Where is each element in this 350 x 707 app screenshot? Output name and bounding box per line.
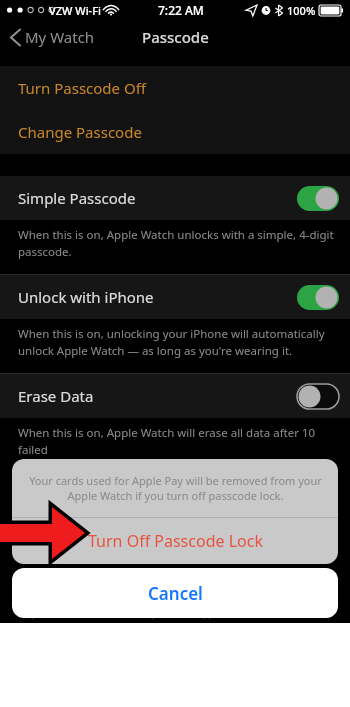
staticText: Unlock with iPhone <box>18 287 297 307</box>
staticText: Change Passcode <box>18 122 142 142</box>
staticText: My Watch <box>23 608 65 620</box>
staticText: Turn Passcode Off <box>18 78 146 98</box>
button[interactable]: Toggle on <box>297 285 339 310</box>
button[interactable]: Erase Data <box>0 374 350 418</box>
button[interactable]: Turn Passcode Off <box>0 66 350 110</box>
staticText: When this is on, unlocking your iPhone w… <box>18 326 325 358</box>
staticText: Passcode <box>142 27 209 47</box>
button[interactable]: Face Gallery <box>87 605 174 623</box>
staticText: Face Gallery <box>105 608 157 620</box>
staticText: App Store <box>197 608 239 620</box>
button[interactable]: Toggle off <box>297 384 339 409</box>
staticText: Cancel <box>148 582 203 605</box>
staticText: Your cards used for Apple Pay will be re… <box>29 473 322 503</box>
staticText: Turn Off Passcode Lock <box>88 530 263 552</box>
staticText: My Watch <box>25 27 95 47</box>
button[interactable]: Cancel <box>12 568 338 618</box>
staticText: Simple Passcode <box>18 188 297 208</box>
button[interactable]: App Store <box>174 605 262 623</box>
staticText: When this is on, Apple Watch unlocks wit… <box>18 227 334 259</box>
button[interactable]: Unlock with iPhone <box>0 275 350 319</box>
staticText: Search <box>292 608 321 620</box>
button[interactable]: My Watch <box>0 605 87 623</box>
button[interactable]: Toggle on <box>297 186 339 211</box>
button[interactable]: Search <box>262 605 350 623</box>
button[interactable]: Turn Off Passcode Lock <box>12 518 338 564</box>
staticText: VZW Wi-Fi <box>49 3 101 18</box>
staticText: Erase Data <box>18 386 297 406</box>
staticText: When this is on, Apple Watch will erase … <box>18 425 338 472</box>
button[interactable]: Simple Passcode <box>0 176 350 220</box>
staticText: 7:22 AM <box>158 2 204 18</box>
staticText: 100% <box>287 3 316 18</box>
button[interactable]: Change Passcode <box>0 110 350 154</box>
button[interactable]: My Watch <box>0 23 105 51</box>
